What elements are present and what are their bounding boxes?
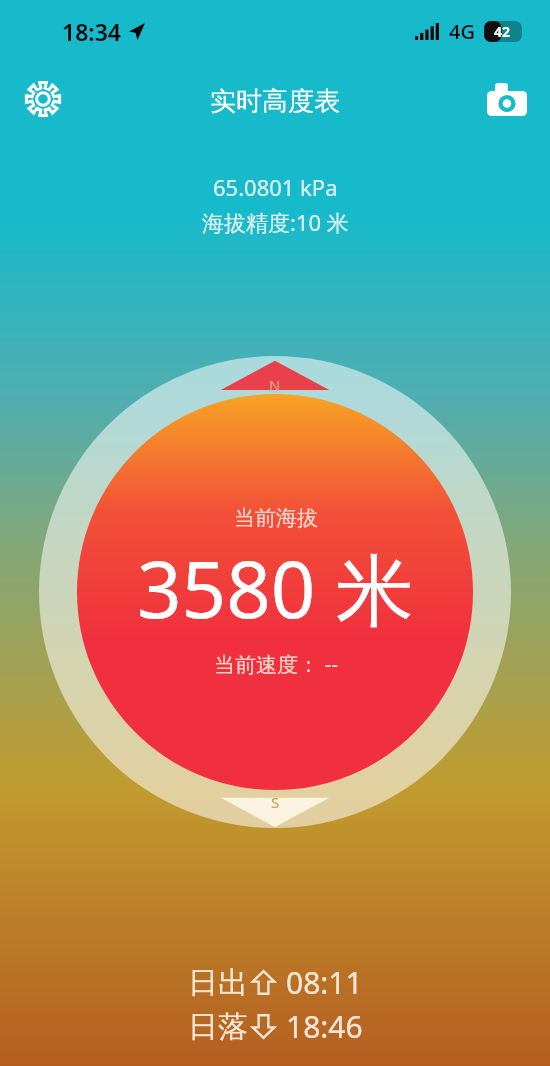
staticText: 18:34 bbox=[62, 16, 121, 47]
staticText: 18:46 bbox=[286, 1006, 363, 1047]
staticText: 42 bbox=[494, 22, 511, 41]
staticText: 海拔精度:10 米 bbox=[202, 207, 349, 237]
staticText: S bbox=[271, 792, 280, 812]
staticText: 08:11 bbox=[286, 962, 363, 1003]
staticText: 65.0801 kPa bbox=[213, 172, 338, 202]
staticText: 当前海拔 bbox=[234, 505, 318, 531]
staticText: N bbox=[269, 375, 281, 395]
staticText: 日出 bbox=[188, 964, 248, 1002]
staticText: 3580 米 bbox=[137, 535, 414, 642]
staticText: 当前速度： -- bbox=[214, 650, 338, 679]
button[interactable]: Camera bbox=[478, 70, 536, 128]
button[interactable]: Settings bbox=[14, 70, 72, 128]
staticText: 日落 bbox=[188, 1008, 248, 1046]
staticText: 4G bbox=[449, 18, 475, 45]
staticText: 实时高度表 bbox=[210, 85, 340, 118]
